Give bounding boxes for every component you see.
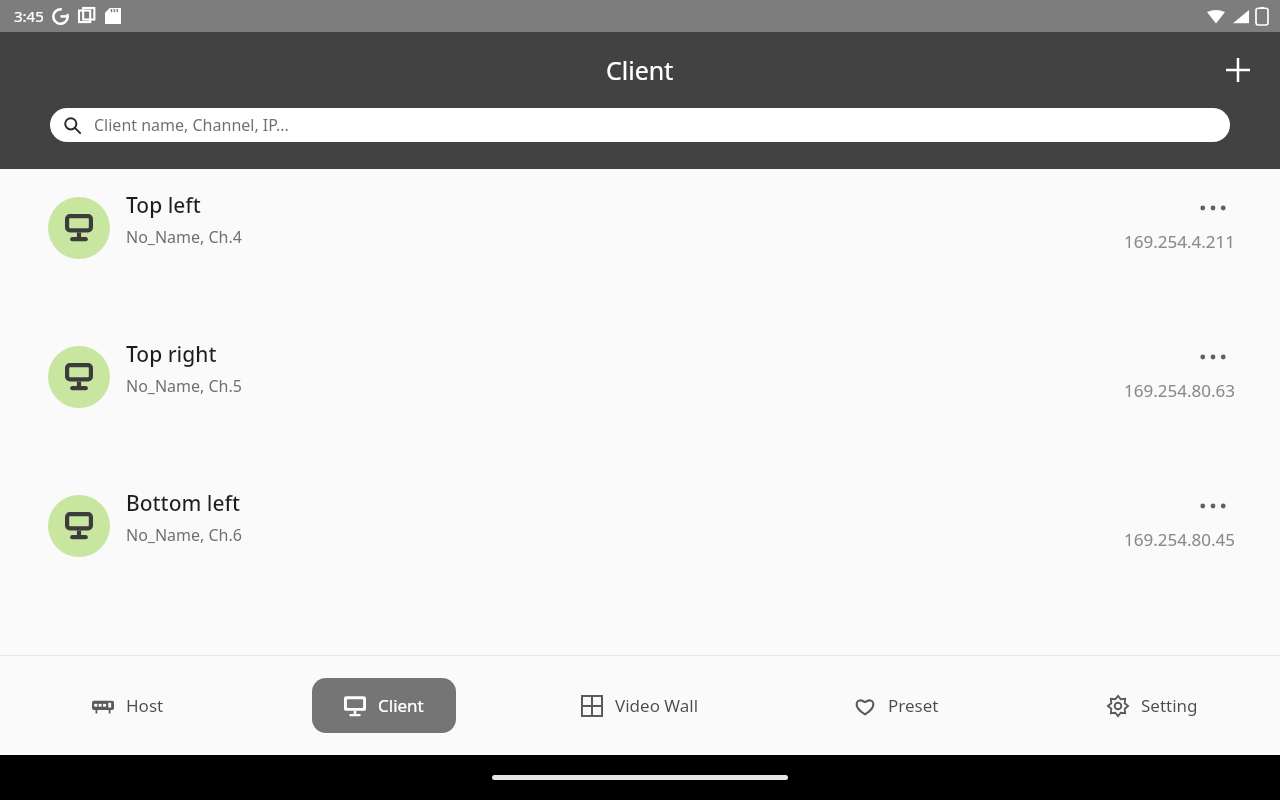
button[interactable]: Bottom left bbox=[0, 467, 1280, 616]
button[interactable]: Top left bbox=[0, 169, 1280, 318]
staticText: Video Wall bbox=[615, 694, 699, 717]
staticText: No_Name, Ch.4 bbox=[126, 226, 242, 248]
staticText: Top right bbox=[126, 340, 217, 369]
button[interactable]: More options bbox=[1191, 195, 1235, 221]
staticText: Client bbox=[378, 694, 424, 717]
button[interactable]: Setting bbox=[1107, 694, 1198, 717]
button[interactable]: More options bbox=[1191, 344, 1235, 370]
staticText: Preset bbox=[888, 694, 939, 717]
button[interactable]: Top right bbox=[0, 318, 1280, 467]
button[interactable]: Video Wall bbox=[581, 694, 699, 717]
staticText: 169.254.80.63 bbox=[1124, 379, 1235, 402]
button[interactable]: More options bbox=[1191, 493, 1235, 519]
button[interactable]: Preset bbox=[854, 694, 939, 717]
button[interactable]: Add client bbox=[1216, 48, 1260, 92]
button[interactable]: Client bbox=[344, 694, 424, 717]
staticText: No_Name, Ch.6 bbox=[126, 524, 242, 546]
staticText: 169.254.4.211 bbox=[1124, 230, 1235, 253]
staticText: Bottom left bbox=[126, 489, 241, 518]
staticText: 169.254.80.45 bbox=[1124, 528, 1235, 551]
button[interactable]: Host bbox=[92, 694, 164, 717]
staticText: No_Name, Ch.5 bbox=[126, 375, 242, 397]
staticText: Client name, Channel, IP... bbox=[94, 114, 289, 136]
button[interactable]: Client name, Channel, IP... bbox=[50, 108, 1230, 142]
staticText: 3:45 bbox=[14, 6, 44, 26]
staticText: Host bbox=[126, 694, 164, 717]
staticText: Setting bbox=[1141, 694, 1198, 717]
staticText: Top left bbox=[126, 191, 201, 220]
staticText: Client bbox=[606, 53, 674, 87]
